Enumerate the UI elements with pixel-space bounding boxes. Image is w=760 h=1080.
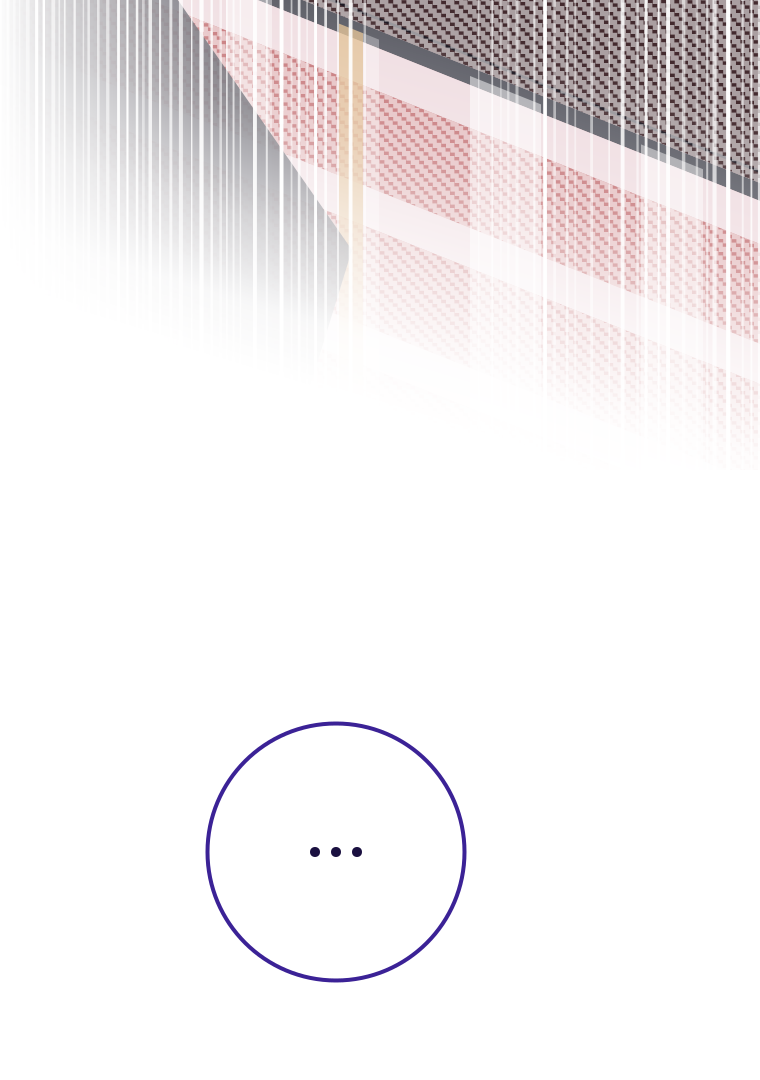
button[interactable]: More options	[196, 720, 476, 984]
